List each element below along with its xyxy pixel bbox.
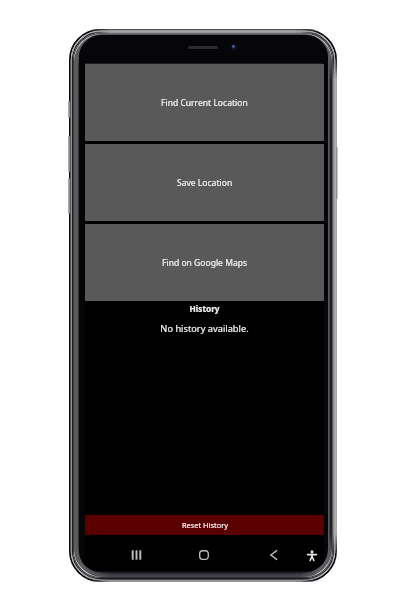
button[interactable]: Back	[253, 537, 293, 571]
staticText: No history available.	[85, 322, 324, 335]
staticText: Reset History	[182, 520, 228, 530]
button[interactable]: Accessibility	[292, 537, 328, 571]
staticText: History	[85, 303, 324, 314]
button[interactable]: Find Current Location	[85, 64, 324, 141]
button[interactable]: Find on Google Maps	[85, 224, 324, 301]
button[interactable]: Save Location	[85, 144, 324, 221]
button[interactable]: Recent apps	[116, 537, 156, 571]
button[interactable]: Reset History	[85, 515, 324, 535]
staticText: Save Location	[177, 177, 233, 189]
button[interactable]: Home	[184, 537, 224, 571]
staticText: Find Current Location	[161, 97, 248, 109]
staticText: Find on Google Maps	[162, 257, 248, 269]
